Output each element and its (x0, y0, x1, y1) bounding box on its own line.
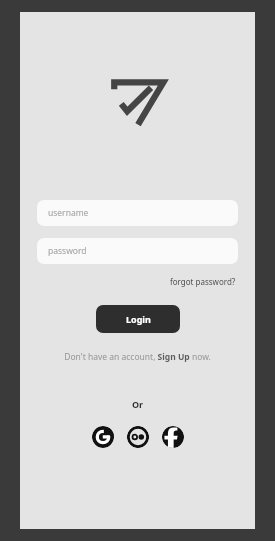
button[interactable]: Sign in with Flickr (127, 426, 149, 448)
button[interactable]: Login (96, 305, 180, 333)
staticText: Login (126, 313, 151, 325)
button[interactable]: Sign in with Facebook (162, 426, 184, 448)
button[interactable]: forgot password? (168, 274, 238, 289)
staticText: username (48, 207, 89, 219)
button[interactable]: Don't have an account, Sign Up now. (61, 349, 214, 365)
staticText: Don't have an account, Sign Up now. (64, 351, 211, 363)
staticText: password (48, 245, 87, 257)
staticText: forgot password? (170, 276, 236, 287)
button[interactable]: password (37, 238, 238, 264)
button[interactable]: username (37, 200, 238, 226)
button[interactable]: Sign in with Google (92, 426, 114, 448)
staticText: Or (132, 398, 144, 410)
